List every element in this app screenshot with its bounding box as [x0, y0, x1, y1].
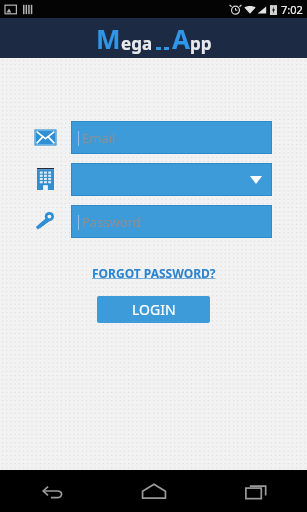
button[interactable]: Password — [72, 206, 271, 237]
other: Email — [28, 120, 62, 154]
button[interactable]: FORGOT PASSWORD? — [86, 262, 222, 284]
button[interactable]: LOGIN — [97, 296, 210, 323]
button[interactable] — [72, 164, 271, 195]
staticText: pp — [190, 32, 212, 55]
staticText: A — [172, 21, 190, 56]
button[interactable]: Back — [0, 470, 103, 512]
other: Password — [28, 204, 62, 238]
staticText: LOGIN — [132, 300, 176, 319]
other: Company — [28, 162, 62, 196]
staticText: Email — [82, 129, 116, 147]
staticText: Password — [82, 213, 141, 231]
button[interactable]: Recent apps — [205, 470, 307, 512]
button[interactable]: Home — [103, 470, 205, 512]
staticText: 7:02 — [281, 2, 303, 17]
button[interactable]: Email — [72, 122, 271, 153]
staticText: FORGOT PASSWORD? — [92, 265, 216, 281]
staticText: ega — [121, 32, 153, 55]
staticText: M — [96, 21, 121, 56]
